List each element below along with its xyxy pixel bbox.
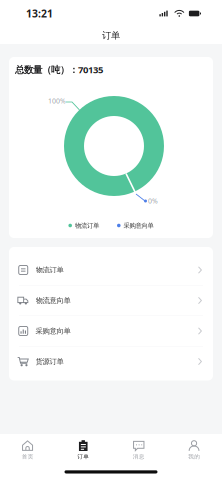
button[interactable]: 我的 xyxy=(166,434,222,462)
staticText: 总数量（吨）：70135 xyxy=(15,63,103,76)
staticText: 采购意向单 xyxy=(35,326,70,336)
staticText: 采购意向单 xyxy=(124,221,154,230)
button[interactable]: 首页 xyxy=(0,434,55,462)
staticText: 0% xyxy=(148,196,158,205)
staticText: 货源订单 xyxy=(35,357,63,366)
staticText: 100% xyxy=(48,96,66,105)
staticText: 订单 xyxy=(77,453,89,460)
button[interactable]: 订单 xyxy=(55,434,111,462)
staticText: 消息 xyxy=(133,453,145,460)
staticText: 物流订单 xyxy=(75,221,99,230)
button[interactable]: 物流订单 xyxy=(9,255,213,285)
staticText: 我的 xyxy=(188,453,200,460)
staticText: 首页 xyxy=(22,453,34,460)
staticText: 订单 xyxy=(102,30,120,41)
button[interactable]: 货源订单 xyxy=(9,346,213,376)
button[interactable]: 采购意向单 xyxy=(9,316,213,346)
staticText: 物流订单 xyxy=(35,265,63,275)
button[interactable]: 消息 xyxy=(111,434,166,462)
staticText: 物流意向单 xyxy=(35,296,70,305)
staticText: 13:21 xyxy=(26,6,53,21)
button[interactable]: 物流意向单 xyxy=(9,285,213,316)
